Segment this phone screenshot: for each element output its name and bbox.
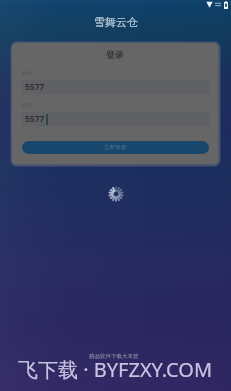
staticText: 5577 (25, 81, 45, 93)
staticText: 雪舞云仓 (94, 15, 138, 29)
button[interactable]: 5577 (22, 112, 209, 126)
staticText: 飞下载 · BYFZXY.COM (18, 356, 213, 383)
staticText: 密码 (22, 102, 32, 108)
staticText: 精品软件下载大本营 (89, 353, 139, 360)
staticText: 立即登录 (104, 144, 127, 151)
staticText: 5577 (25, 113, 45, 125)
staticText: 登录 (106, 50, 124, 61)
staticText: 账号 (22, 70, 32, 76)
button[interactable]: 立即登录 (22, 141, 209, 154)
button[interactable]: 5577 (22, 80, 209, 94)
